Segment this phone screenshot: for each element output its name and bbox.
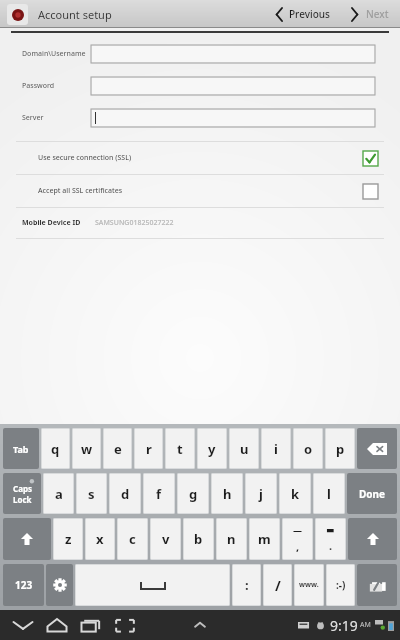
button[interactable]: :-) xyxy=(326,564,355,606)
button[interactable]: v xyxy=(150,518,181,560)
staticText: Password xyxy=(22,81,90,91)
staticText: :-) xyxy=(336,578,346,592)
staticText: ▬ xyxy=(326,525,335,535)
button[interactable]: Status xyxy=(298,610,394,640)
button[interactable]: Tab xyxy=(3,428,39,469)
button[interactable]: u xyxy=(229,428,259,469)
staticText: www. xyxy=(299,580,319,590)
button[interactable]: Accept all SSL certificates xyxy=(0,175,400,207)
button[interactable]: shift xyxy=(3,518,51,560)
button[interactable]: c xyxy=(117,518,148,560)
button[interactable]: gear xyxy=(46,564,73,606)
staticText: d xyxy=(121,485,130,503)
staticText: q xyxy=(51,440,60,458)
button[interactable]: Done xyxy=(347,473,397,514)
button[interactable]: b xyxy=(183,518,214,560)
button[interactable]: shift xyxy=(348,518,397,560)
staticText: : xyxy=(245,576,249,594)
staticText: AM xyxy=(360,620,371,630)
button[interactable]: y xyxy=(197,428,227,469)
button[interactable]: Password xyxy=(0,75,400,97)
staticText: s xyxy=(88,485,95,503)
button[interactable]: Next xyxy=(346,7,393,21)
staticText: Next xyxy=(366,7,389,21)
staticText: v xyxy=(162,530,170,548)
button[interactable]: q xyxy=(41,428,70,469)
staticText: u xyxy=(240,440,249,458)
button[interactable]: a xyxy=(43,473,74,514)
staticText: c xyxy=(129,530,136,548)
button[interactable]: s xyxy=(76,473,107,514)
button[interactable]: e xyxy=(103,428,132,469)
staticText: m xyxy=(258,530,271,548)
staticText: b xyxy=(194,530,203,548)
button[interactable]: j xyxy=(245,473,277,514)
staticText: z xyxy=(65,530,72,548)
staticText: Done xyxy=(359,487,386,501)
staticText: i xyxy=(274,440,278,458)
button[interactable]: z xyxy=(53,518,83,560)
button[interactable]: — xyxy=(282,518,313,560)
button[interactable]: o xyxy=(293,428,323,469)
staticText: p xyxy=(336,440,345,458)
staticText: Account setup xyxy=(38,7,112,22)
staticText: f xyxy=(156,485,162,503)
button[interactable]: p xyxy=(325,428,355,469)
button[interactable]: backspace xyxy=(357,428,397,469)
button[interactable]: g xyxy=(177,473,209,514)
staticText: g xyxy=(189,485,198,503)
staticText: a xyxy=(55,485,63,503)
staticText: o xyxy=(304,440,313,458)
staticText: Lock xyxy=(13,494,32,505)
button[interactable]: Use secure connection (SSL) xyxy=(0,142,400,174)
button[interactable]: Hide keyboard xyxy=(6,610,40,640)
staticText: x xyxy=(96,530,104,548)
button[interactable]: x xyxy=(85,518,115,560)
button[interactable]: clip xyxy=(357,564,397,606)
staticText: l xyxy=(327,485,331,503)
button[interactable]: i xyxy=(261,428,291,469)
staticText: e xyxy=(114,440,122,458)
staticText: Server xyxy=(22,113,90,123)
button[interactable]: h xyxy=(211,473,243,514)
staticText: r xyxy=(146,440,152,458)
staticText: t xyxy=(177,440,183,458)
staticText: y xyxy=(208,440,216,458)
button[interactable]: k xyxy=(279,473,311,514)
button[interactable]: r xyxy=(134,428,163,469)
staticText: 123 xyxy=(15,578,33,592)
button[interactable]: m xyxy=(249,518,280,560)
staticText: k xyxy=(291,485,300,503)
button[interactable]: / xyxy=(263,564,292,606)
button[interactable]: Domain\Username xyxy=(0,43,400,65)
button[interactable]: Home xyxy=(40,610,74,640)
staticText: w xyxy=(81,440,93,458)
button[interactable]: t xyxy=(165,428,195,469)
button[interactable]: space xyxy=(75,564,230,606)
staticText: Tab xyxy=(13,443,29,455)
button[interactable]: Full screen xyxy=(108,610,142,640)
button[interactable]: www. xyxy=(294,564,324,606)
staticText: Use secure connection (SSL) xyxy=(38,153,132,163)
staticText: SAMSUNG01825027222 xyxy=(95,218,174,228)
button[interactable]: n xyxy=(216,518,247,560)
button[interactable]: Caps xyxy=(3,473,41,514)
staticText: Previous xyxy=(289,7,330,21)
button[interactable]: f xyxy=(143,473,175,514)
button[interactable]: Recent apps xyxy=(74,610,108,640)
button[interactable]: : xyxy=(232,564,261,606)
staticText: Domain\Username xyxy=(22,49,90,59)
button[interactable]: Previous xyxy=(271,7,334,21)
button[interactable]: ▬ xyxy=(315,518,346,560)
button[interactable]: d xyxy=(109,473,141,514)
staticText: n xyxy=(227,530,236,548)
staticText: Accept all SSL certificates xyxy=(38,186,123,196)
button[interactable]: w xyxy=(72,428,101,469)
button[interactable]: Show navigation xyxy=(185,610,215,640)
staticText: — xyxy=(293,524,303,536)
button[interactable]: Server xyxy=(0,107,400,129)
button[interactable]: 123 xyxy=(3,564,44,606)
staticText: / xyxy=(275,576,281,595)
button[interactable]: l xyxy=(313,473,345,514)
button[interactable]: App icon xyxy=(7,4,28,25)
